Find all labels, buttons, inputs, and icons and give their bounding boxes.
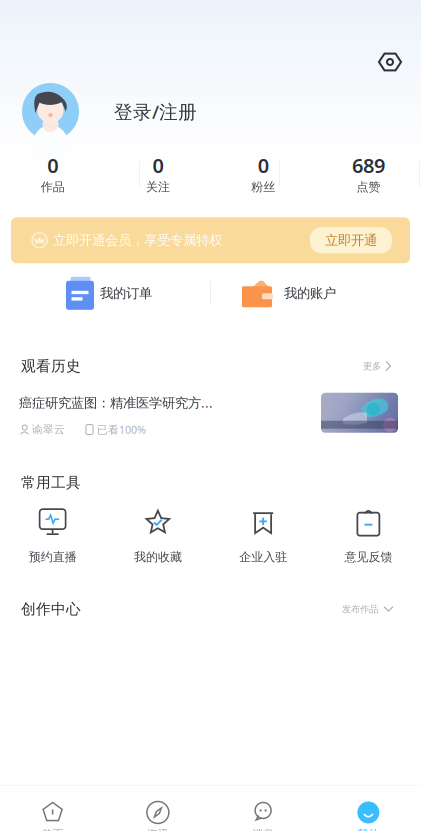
button[interactable]: 更多 — [363, 356, 392, 376]
staticText: 已看100% — [97, 422, 146, 437]
button[interactable]: 689 — [316, 152, 421, 194]
button[interactable]: 企业入驻 — [210, 509, 316, 564]
button[interactable]: 发布作品 — [342, 599, 394, 619]
staticText: 常用工具 — [21, 474, 81, 492]
staticText: 首页 — [42, 827, 64, 831]
button[interactable]: Settings — [369, 41, 411, 83]
staticText: 0 — [258, 152, 269, 179]
staticText: 企业入驻 — [239, 550, 287, 564]
staticText: 立即开通 — [325, 232, 377, 248]
staticText: 意见反馈 — [344, 550, 392, 564]
staticText: 作品 — [41, 180, 65, 194]
staticText: 我的账户 — [284, 285, 336, 301]
button[interactable]: 立即开通会员，享受专属特权 — [11, 217, 410, 263]
staticText: 消息 — [252, 827, 274, 831]
button[interactable]: 0 — [105, 152, 210, 194]
button[interactable]: 我的订单 — [0, 276, 210, 310]
staticText: 谕翠云 — [32, 423, 65, 436]
button[interactable]: 预约直播 — [0, 509, 105, 564]
staticText: 发布作品 — [342, 603, 378, 615]
button[interactable]: 首页 — [0, 800, 105, 831]
staticText: 689 — [352, 152, 385, 179]
staticText: 点赞 — [356, 180, 380, 194]
button[interactable]: 消息 — [210, 800, 316, 831]
staticText: 观看历史 — [21, 357, 81, 375]
button[interactable]: 我的收藏 — [105, 509, 210, 564]
staticText: 我的收藏 — [134, 550, 182, 564]
staticText: 资讯 — [147, 827, 169, 831]
staticText: 我的 — [357, 827, 379, 831]
button[interactable]: 我的账户 — [211, 276, 421, 310]
staticText: 关注 — [146, 180, 170, 194]
button[interactable]: 我的 — [316, 800, 421, 831]
button[interactable]: 意见反馈 — [316, 509, 421, 564]
button[interactable]: 资讯 — [105, 800, 210, 831]
button[interactable]: 0 — [0, 152, 105, 194]
button[interactable]: 癌症研究蓝图：精准医学研究方... — [0, 376, 421, 437]
staticText: 更多 — [363, 360, 381, 372]
staticText: 立即开通会员，享受专属特权 — [53, 232, 222, 248]
staticText: 登录/注册 — [114, 99, 197, 124]
staticText: 预约直播 — [29, 550, 77, 564]
staticText: 0 — [47, 152, 58, 179]
staticText: 粉丝 — [251, 180, 275, 194]
staticText: 0 — [152, 152, 163, 179]
button[interactable]: 0 — [210, 152, 316, 194]
staticText: 创作中心 — [21, 600, 81, 618]
staticText: 癌症研究蓝图：精准医学研究方... — [19, 394, 213, 411]
staticText: 我的订单 — [100, 285, 152, 301]
